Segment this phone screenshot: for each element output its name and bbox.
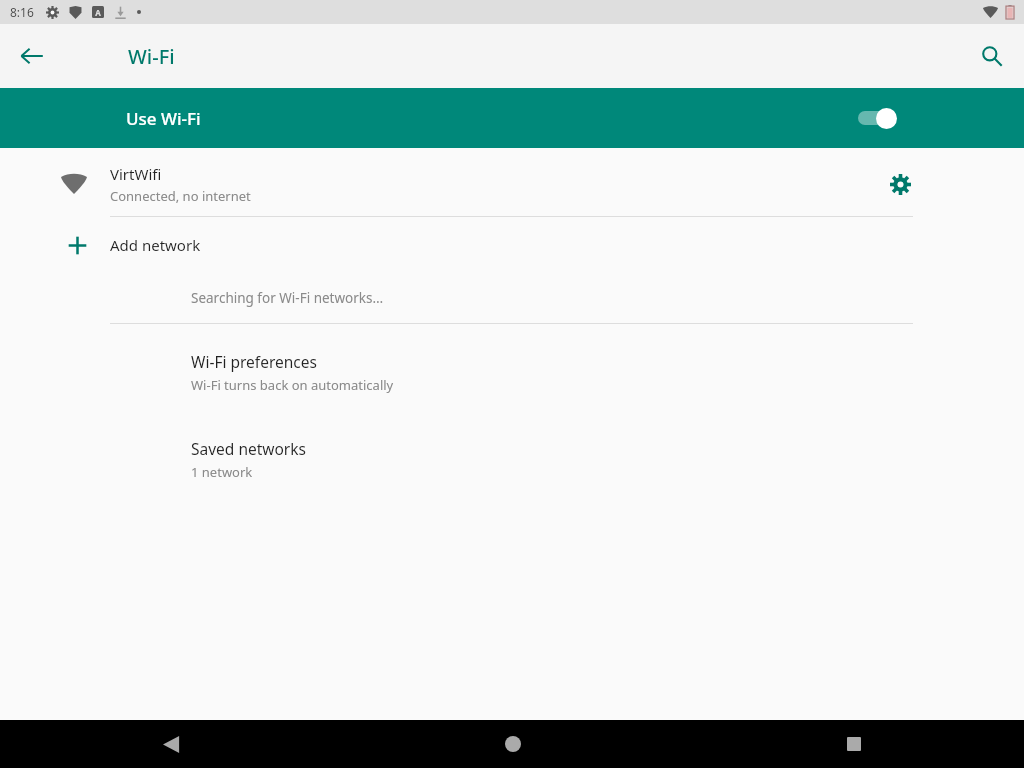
button[interactable]: Search	[968, 32, 1016, 80]
button[interactable]: Network settings	[878, 162, 922, 206]
staticText: Saved networks	[191, 438, 306, 459]
button[interactable]: Home	[342, 720, 683, 768]
button[interactable]: VirtWifi	[0, 152, 1024, 216]
staticText: Wi-Fi	[128, 43, 175, 70]
staticText: VirtWifi	[110, 164, 162, 184]
staticText: 8:16	[10, 4, 34, 20]
staticText: Add network	[110, 235, 201, 255]
staticText: 1 network	[191, 463, 253, 481]
staticText: Searching for Wi-Fi networks…	[191, 289, 384, 307]
staticText: Use Wi-Fi	[126, 107, 201, 130]
button[interactable]: Back	[8, 32, 56, 80]
staticText: Wi-Fi preferences	[191, 351, 317, 372]
staticText: Wi-Fi turns back on automatically	[191, 376, 394, 394]
button[interactable]: Use Wi-Fi	[0, 88, 1024, 148]
button[interactable]: Recent apps	[683, 720, 1024, 768]
button[interactable]: Add network	[0, 217, 1024, 273]
staticText: Connected, no internet	[110, 187, 251, 205]
button[interactable]: Back	[0, 720, 342, 768]
button[interactable]: Saved networks	[0, 424, 1024, 487]
staticText: A	[95, 7, 101, 18]
button[interactable]: Wi-Fi preferences	[0, 324, 1024, 400]
